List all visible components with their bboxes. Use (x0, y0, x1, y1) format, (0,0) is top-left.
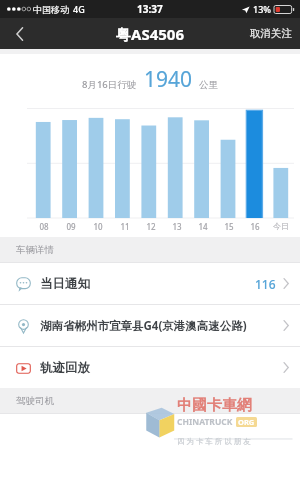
staticText: 湖南省郴州市宜章县G4(京港澳高速公路) (40, 318, 247, 334)
staticText: 14 (198, 221, 208, 232)
staticText: 粤AS4506 (116, 24, 184, 44)
button[interactable]: Back (0, 18, 40, 49)
staticText: 四 为 卡 车 所 以 朋 友 (177, 436, 251, 446)
staticText: 驾驶司机 (16, 395, 54, 407)
staticText: 车辆详情 (16, 244, 54, 256)
staticText: 09 (66, 221, 76, 232)
staticText: ORG (238, 417, 255, 427)
staticText: 15 (224, 221, 234, 232)
button[interactable]: 当日通知 (0, 263, 300, 304)
staticText: 公里 (199, 79, 218, 91)
staticText: 16 (250, 221, 260, 232)
staticText: 4G (73, 3, 85, 15)
staticText: 116 (255, 276, 276, 292)
staticText: 中国移动 (33, 4, 69, 15)
button[interactable]: 取消关注 (242, 21, 300, 46)
staticText: 12 (146, 221, 156, 232)
staticText: 10 (93, 221, 103, 232)
staticText: 08 (39, 221, 49, 232)
button[interactable]: 湖南省郴州市宜章县G4(京港澳高速公路) (0, 305, 300, 346)
staticText: 中國卡車網 (177, 396, 252, 415)
staticText: 13:37 (137, 2, 163, 16)
staticText: 轨迹回放 (40, 360, 90, 376)
staticText: 取消关注 (250, 27, 292, 40)
staticText: 11 (120, 221, 130, 232)
staticText: 今日 (273, 221, 289, 231)
button[interactable]: 轨迹回放 (0, 347, 300, 388)
staticText: 当日通知 (40, 276, 90, 292)
staticText: 8月16日行驶 (82, 78, 137, 91)
staticText: CHINATRUCK (177, 416, 233, 428)
staticText: 13 (172, 221, 182, 232)
staticText: 13% (253, 3, 271, 15)
staticText: 1940 (144, 65, 193, 94)
